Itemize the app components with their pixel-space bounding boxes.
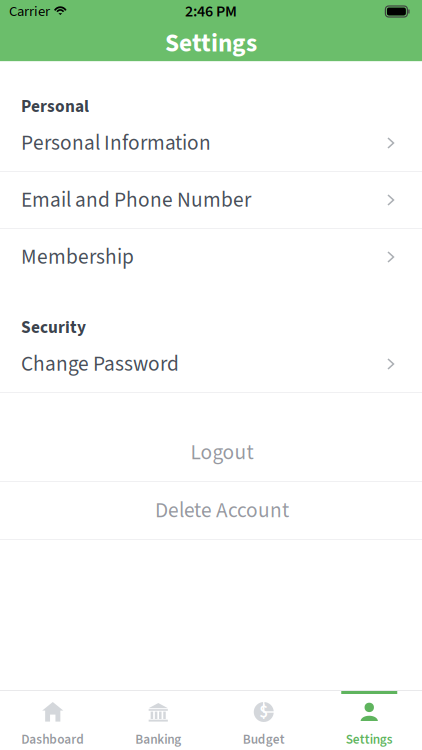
staticText: Membership [21, 242, 134, 272]
button[interactable]: $ [211, 691, 316, 750]
staticText: Personal [21, 94, 89, 119]
staticText: Security [21, 315, 86, 340]
staticText: Delete Account [155, 495, 289, 526]
staticText: Personal Information [21, 128, 211, 158]
button[interactable]: Membership [0, 229, 422, 285]
button[interactable]: Settings [316, 691, 422, 750]
button[interactable]: Logout [0, 424, 422, 481]
button[interactable]: Dashboard [0, 691, 105, 750]
staticText: Settings [346, 730, 393, 749]
staticText: Change Password [21, 349, 179, 379]
button[interactable]: Personal Information [0, 115, 422, 171]
button[interactable]: Change Password [0, 336, 422, 392]
button[interactable]: Email and Phone Number [0, 172, 422, 228]
staticText: Settings [165, 25, 257, 62]
staticText: Budget [243, 730, 285, 749]
staticText: Logout [190, 437, 253, 468]
staticText: $ [259, 700, 268, 724]
staticText: 2:46 PM [185, 0, 237, 23]
staticText: Banking [135, 730, 181, 749]
button[interactable]: Delete Account [0, 482, 422, 539]
staticText: Dashboard [21, 730, 84, 749]
button[interactable]: Banking [105, 691, 211, 750]
staticText: Carrier [9, 1, 50, 22]
staticText: Email and Phone Number [21, 185, 251, 215]
